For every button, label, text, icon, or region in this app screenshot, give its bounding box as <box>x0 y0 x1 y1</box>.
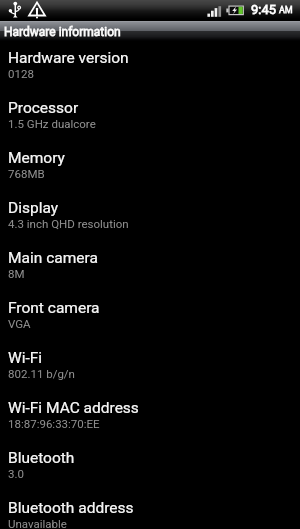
staticText: Main camera <box>8 249 98 267</box>
staticText: Bluetooth <box>8 449 75 467</box>
staticText: Wi-Fi MAC address <box>8 399 139 417</box>
button[interactable]: Front camera <box>0 291 300 341</box>
staticText: 8M <box>8 267 25 280</box>
staticText: 3.0 <box>8 467 24 480</box>
staticText: Display <box>8 199 59 217</box>
button[interactable]: Memory <box>0 141 300 191</box>
button[interactable]: Display <box>0 191 300 241</box>
staticText: 4.3 inch QHD resolution <box>8 217 129 230</box>
staticText: Unavailable <box>8 517 67 529</box>
button[interactable]: Hardware version <box>0 41 300 91</box>
staticText: Processor <box>8 99 79 117</box>
button[interactable]: Bluetooth <box>0 441 300 491</box>
staticText: 18:87:96:33:70:EE <box>8 417 100 430</box>
staticText: 768MB <box>8 167 45 180</box>
staticText: 9:45 <box>251 2 277 17</box>
staticText: Wi-Fi <box>8 349 43 367</box>
button[interactable]: Main camera <box>0 241 300 291</box>
staticText: Bluetooth address <box>8 499 134 517</box>
staticText: Hardware version <box>8 49 129 67</box>
staticText: Memory <box>8 149 65 167</box>
staticText: 1.5 GHz dualcore <box>8 117 96 130</box>
staticText: Hardware information <box>4 25 121 39</box>
staticText: 0128 <box>8 67 34 80</box>
button[interactable]: Processor <box>0 91 300 141</box>
staticText: Front camera <box>8 299 100 317</box>
button[interactable]: Bluetooth address <box>0 491 300 529</box>
button[interactable]: Wi-Fi MAC address <box>0 391 300 441</box>
staticText: AM <box>279 5 293 16</box>
button[interactable]: Wi-Fi <box>0 341 300 391</box>
staticText: 802.11 b/g/n <box>8 367 75 380</box>
staticText: VGA <box>8 317 31 330</box>
